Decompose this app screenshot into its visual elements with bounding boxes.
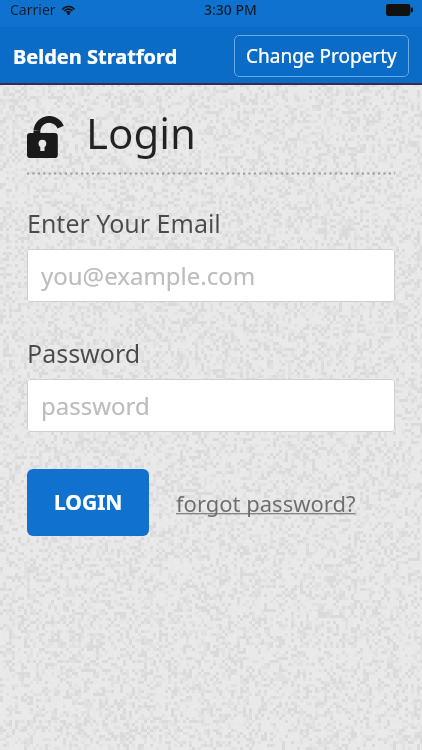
staticText: Login (86, 104, 197, 161)
staticText: 3:30 PM (204, 0, 257, 19)
button[interactable]: Change Property (234, 35, 409, 77)
staticText: password (41, 389, 150, 422)
staticText: Password (27, 336, 141, 370)
staticText: Carrier (10, 0, 56, 19)
button[interactable]: you@example.com (27, 249, 395, 302)
button[interactable]: forgot password? (176, 482, 356, 524)
staticText: Change Property (246, 43, 397, 69)
staticText: forgot password? (176, 488, 356, 518)
button[interactable]: LOGIN (27, 469, 149, 536)
staticText: LOGIN (54, 488, 123, 517)
staticText: Belden Stratford (13, 43, 178, 70)
staticText: Enter Your Email (27, 206, 221, 240)
button[interactable]: password (27, 379, 395, 432)
staticText: you@example.com (41, 259, 256, 292)
